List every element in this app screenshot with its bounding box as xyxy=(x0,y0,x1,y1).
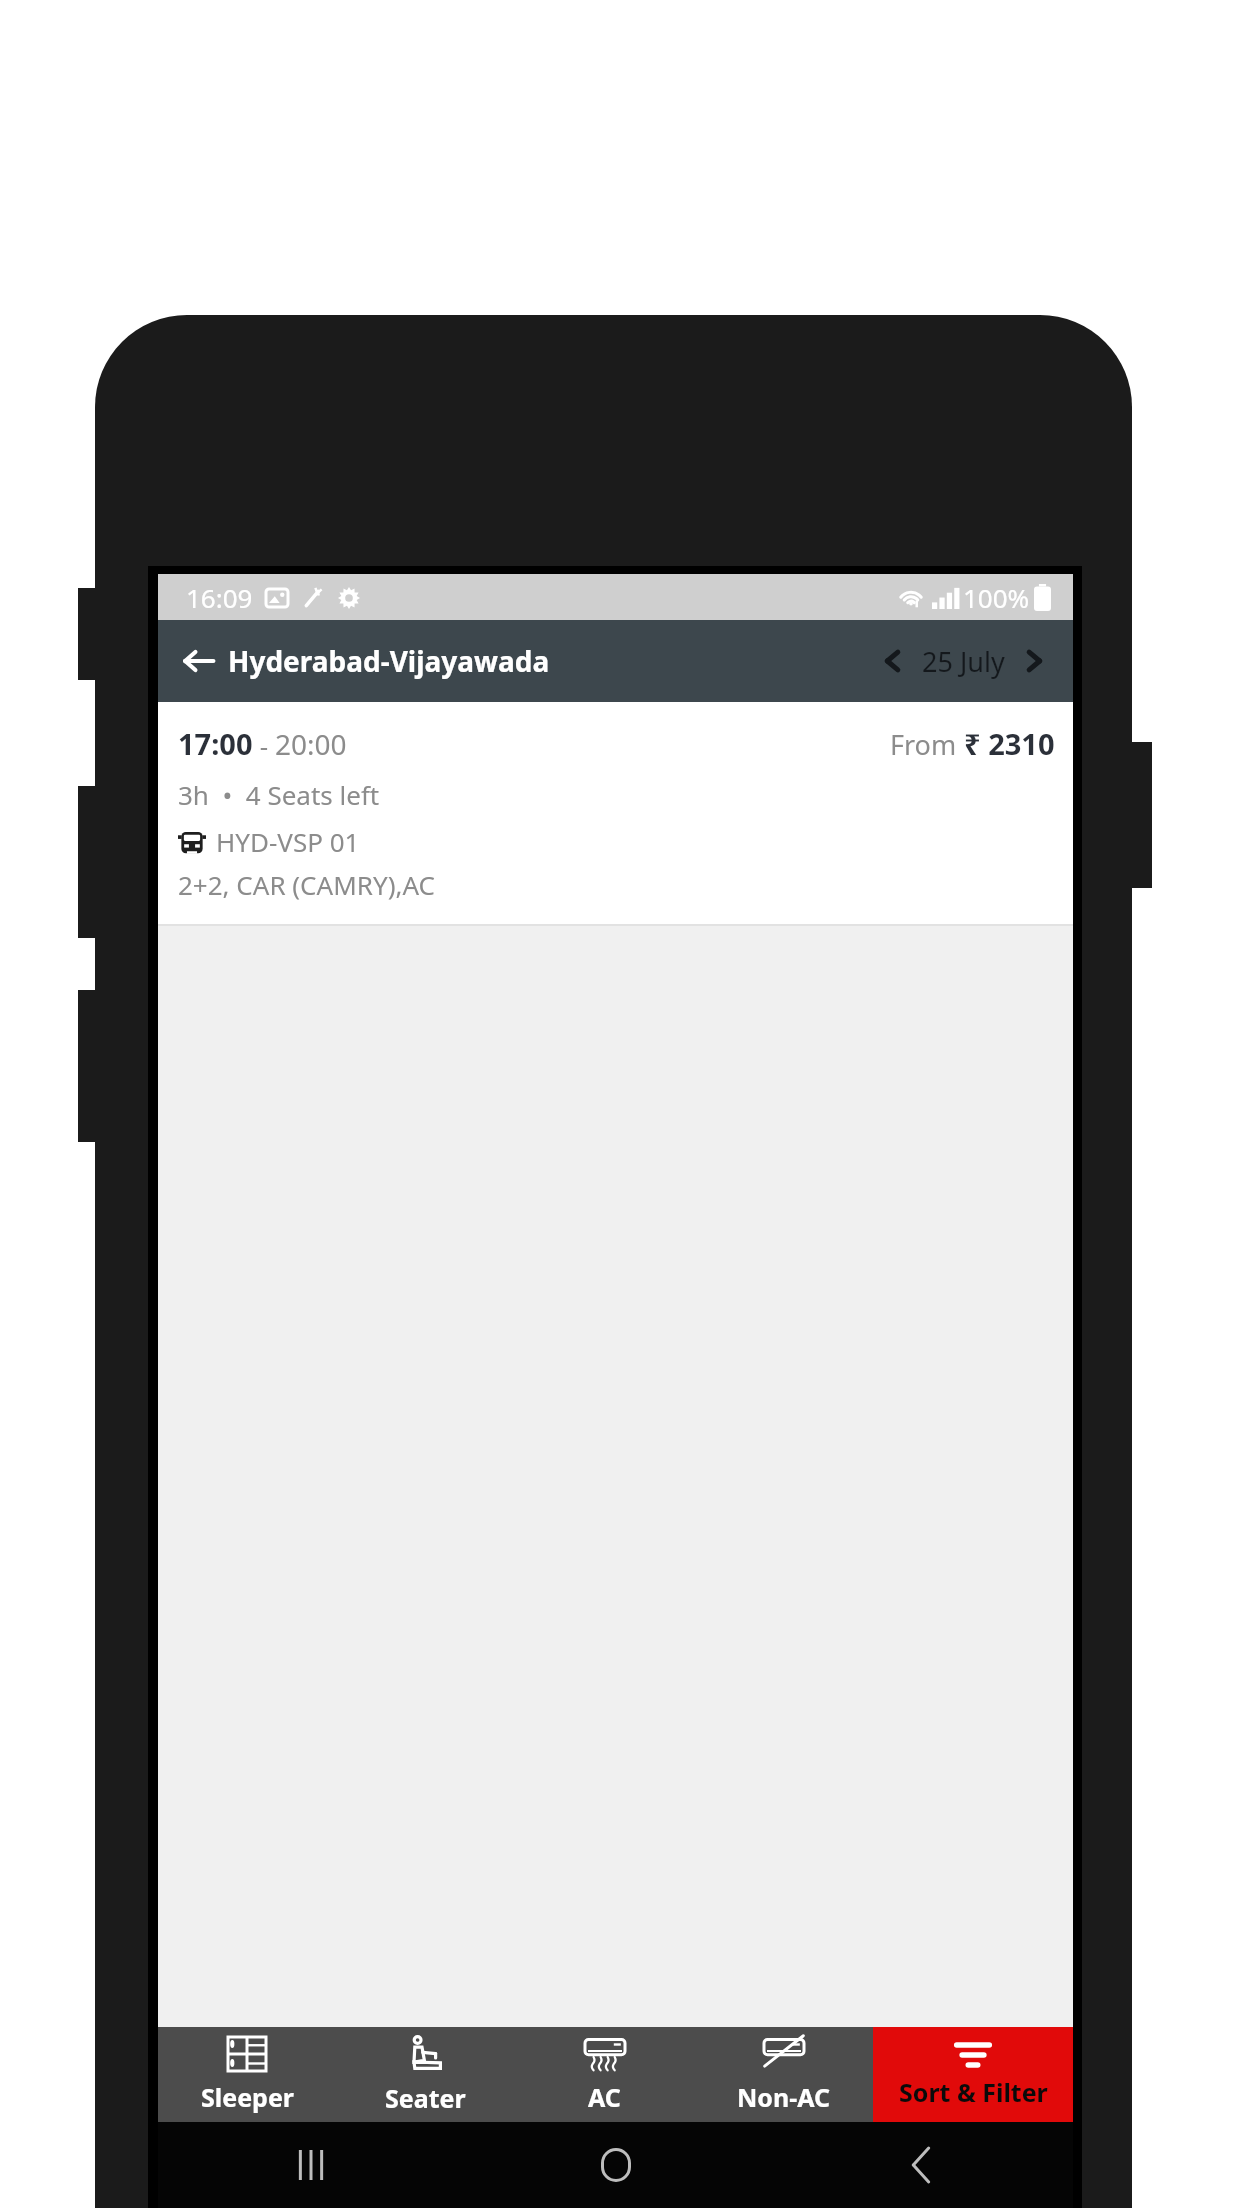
staticText: Sleeper xyxy=(201,2080,294,2114)
button[interactable]: Home xyxy=(463,2122,768,2208)
button[interactable]: 25 July xyxy=(916,643,1011,680)
staticText: 100% xyxy=(963,580,1030,615)
staticText: Non-AC xyxy=(737,2080,831,2114)
button[interactable]: Non-AC xyxy=(694,2027,873,2122)
other: Back xyxy=(184,646,214,676)
button[interactable]: Recents xyxy=(158,2122,463,2208)
staticText: ₹ 2310 xyxy=(964,724,1055,763)
staticText: Hyderabad-Vijayawada xyxy=(228,642,550,680)
button[interactable]: AC xyxy=(515,2027,694,2122)
button[interactable]: 17:00 xyxy=(158,702,1073,924)
staticText: Seater xyxy=(385,2081,466,2115)
staticText: 2+2, CAR (CAMRY),AC xyxy=(178,867,435,902)
button[interactable]: Seater xyxy=(336,2027,515,2122)
staticText: - xyxy=(253,728,275,763)
staticText: AC xyxy=(588,2080,621,2114)
button[interactable]: Back xyxy=(176,636,558,686)
staticText: From xyxy=(890,726,964,763)
staticText: Sort & Filter xyxy=(899,2075,1048,2109)
button[interactable]: Next day xyxy=(1011,638,1057,684)
staticText: 17:00 xyxy=(178,724,253,763)
button[interactable]: Previous day xyxy=(870,638,916,684)
staticText: 20:00 xyxy=(275,725,347,763)
button[interactable]: Back xyxy=(768,2122,1073,2208)
staticText: 3h • 4 Seats left xyxy=(178,777,380,812)
button[interactable]: Sleeper xyxy=(158,2027,336,2122)
staticText: 25 July xyxy=(922,643,1005,680)
button[interactable]: Sort & Filter xyxy=(873,2027,1073,2122)
staticText: HYD-VSP 01 xyxy=(216,824,360,859)
staticText: 16:09 xyxy=(186,580,253,615)
